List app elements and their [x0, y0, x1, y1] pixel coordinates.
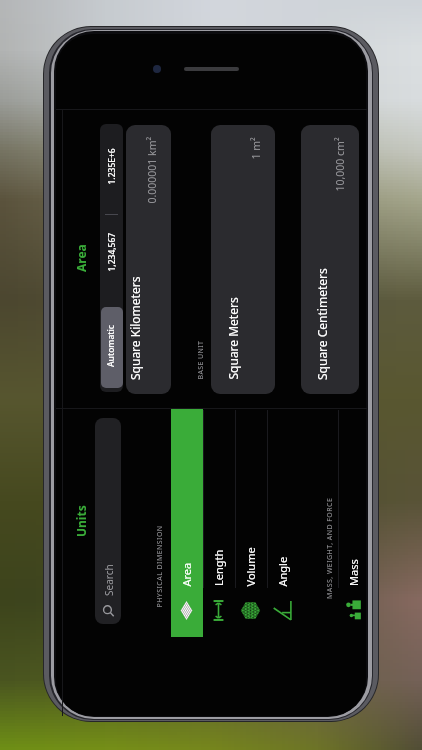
staticText: Area — [73, 244, 89, 272]
staticText: 1 m² — [248, 136, 262, 159]
staticText: Square Meters — [224, 296, 240, 379]
button[interactable]: Search — [95, 418, 121, 624]
staticText: Volume — [242, 546, 257, 586]
staticText: Length — [211, 549, 226, 586]
staticText: 1.235E+6 — [105, 147, 117, 184]
staticText: Angle — [274, 556, 289, 586]
staticText: 1,234,567 — [105, 232, 117, 271]
staticText: BASE UNIT — [195, 340, 205, 379]
staticText: Units — [73, 505, 89, 537]
staticText: Square Centimeters — [314, 268, 330, 380]
button[interactable] — [101, 307, 123, 388]
staticText: PHYSICAL DIMENSION — [154, 524, 164, 607]
staticText: 0.000001 km² — [144, 136, 158, 203]
button[interactable]: Mass — [338, 409, 361, 637]
staticText: Search — [102, 564, 116, 596]
staticText: Mass — [346, 559, 361, 586]
button[interactable]: Volume — [235, 409, 267, 637]
button[interactable]: Angle — [267, 409, 298, 637]
staticText: Area — [178, 562, 193, 586]
staticText: Automatic — [105, 325, 117, 367]
button[interactable]: Square Centimeters — [301, 125, 359, 394]
button[interactable]: Area — [171, 409, 203, 637]
staticText: MASS, WEIGHT, AND FORCE — [325, 497, 335, 599]
staticText: Square Kilometers — [127, 276, 143, 380]
button[interactable]: Length — [203, 409, 234, 637]
button[interactable]: Square Meters — [211, 125, 275, 394]
staticText: 10,000 cm² — [332, 136, 346, 191]
button[interactable]: Square Kilometers — [126, 125, 171, 394]
